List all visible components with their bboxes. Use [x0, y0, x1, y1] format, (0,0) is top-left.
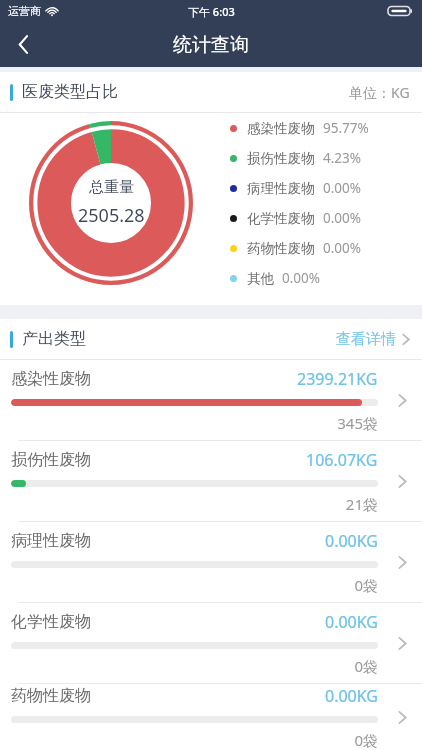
staticText: 0.00% — [323, 209, 362, 227]
staticText: 病理性废物 — [11, 531, 91, 551]
staticText: 单位：KG — [349, 83, 410, 102]
staticText: 总重量 — [89, 178, 134, 197]
staticText: 产出类型 — [22, 329, 86, 349]
staticText: 0.00% — [282, 269, 321, 287]
button[interactable]: Back — [0, 22, 46, 67]
staticText: 0.00% — [323, 179, 362, 197]
staticText: 2399.21KG — [297, 368, 378, 390]
staticText: 2505.28 — [78, 203, 145, 228]
staticText: 病理性废物 — [247, 180, 315, 197]
staticText: 化学性废物 — [247, 210, 315, 227]
staticText: 0袋 — [11, 575, 378, 595]
staticText: 药物性废物 — [11, 686, 91, 706]
button[interactable]: 查看详情 — [336, 330, 410, 349]
staticText: 21袋 — [11, 494, 378, 514]
staticText: 运营商 — [8, 4, 41, 18]
button[interactable]: 化学性废物 — [0, 603, 422, 684]
staticText: 106.07KG — [306, 449, 378, 471]
button[interactable]: 损伤性废物 — [0, 441, 422, 522]
staticText: 0.00% — [323, 239, 362, 257]
staticText: 95.77% — [323, 119, 369, 137]
staticText: 345袋 — [11, 413, 378, 433]
staticText: 感染性废物 — [247, 120, 315, 137]
staticText: 化学性废物 — [11, 612, 91, 632]
button[interactable]: 药物性废物 — [0, 684, 422, 750]
staticText: 统计查询 — [173, 33, 249, 57]
staticText: 0.00KG — [325, 611, 378, 633]
button[interactable]: 感染性废物 — [0, 360, 422, 441]
staticText: 0.00KG — [325, 530, 378, 552]
staticText: 0袋 — [11, 656, 378, 676]
staticText: 4.23% — [323, 149, 362, 167]
staticText: 医废类型占比 — [22, 82, 118, 102]
staticText: 药物性废物 — [247, 240, 315, 257]
staticText: 感染性废物 — [11, 369, 91, 389]
staticText: 0.00KG — [325, 685, 378, 707]
staticText: 损伤性废物 — [11, 450, 91, 470]
staticText: 损伤性废物 — [247, 150, 315, 167]
staticText: 其他 — [247, 270, 274, 287]
staticText: 下午 6:03 — [188, 4, 235, 19]
staticText: 查看详情 — [336, 330, 396, 349]
button[interactable]: 病理性废物 — [0, 522, 422, 603]
staticText: 0袋 — [11, 730, 378, 750]
